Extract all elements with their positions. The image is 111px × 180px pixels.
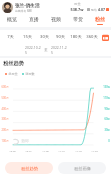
button[interactable]: 2022-11-25 bbox=[51, 45, 67, 55]
staticText: 15天 bbox=[23, 34, 32, 40]
button[interactable]: Rating badge bbox=[106, 8, 109, 11]
staticText: 概览 bbox=[7, 16, 17, 22]
staticText: 粉丝画像 bbox=[74, 166, 91, 171]
button[interactable]: 30天 bbox=[36, 30, 52, 44]
staticText: 360天 bbox=[86, 34, 98, 40]
staticText: 90天 bbox=[56, 34, 65, 40]
staticText: 500万 bbox=[1, 96, 9, 100]
staticText: 110w bbox=[103, 96, 110, 100]
staticText: 带货 bbox=[73, 16, 83, 22]
staticText: 总榜排名 688 bbox=[15, 9, 32, 13]
staticText: 直播 bbox=[29, 16, 39, 22]
staticText: 180天 bbox=[70, 34, 82, 40]
staticText: 11-18 bbox=[75, 149, 82, 152]
staticText: 30w bbox=[104, 128, 110, 132]
staticText: 2022-10-25 bbox=[25, 45, 41, 55]
staticText: 400万 bbox=[1, 107, 9, 111]
staticText: 数据 bbox=[21, 139, 29, 144]
button[interactable]: 粉丝趋势 bbox=[5, 162, 53, 174]
staticText: 4.87 bbox=[98, 7, 105, 12]
button[interactable]: 粉丝 bbox=[89, 14, 111, 27]
staticText: 30天 bbox=[40, 34, 49, 40]
staticText: 200万 bbox=[1, 128, 9, 132]
staticText: 130w bbox=[103, 85, 110, 89]
button[interactable]: 90天 bbox=[52, 30, 68, 44]
staticText: 2022-11-25 bbox=[51, 45, 67, 55]
staticText: 300万 bbox=[1, 117, 9, 121]
button[interactable]: 15天 bbox=[19, 30, 36, 44]
button[interactable]: 直播 bbox=[23, 14, 45, 27]
button[interactable]: 360天 bbox=[84, 30, 100, 44]
staticText: 涨粉数 bbox=[25, 72, 35, 76]
staticText: 总粉丝 bbox=[8, 72, 18, 76]
staticText: 538.7w bbox=[70, 7, 84, 12]
staticText: 11-06 bbox=[42, 149, 49, 152]
button[interactable]: 带货 bbox=[67, 14, 89, 27]
button[interactable]: Profile avatar bbox=[2, 2, 13, 13]
button[interactable]: 2022-10-25 bbox=[25, 45, 41, 55]
staticText: 7天 bbox=[7, 34, 14, 40]
button[interactable]: 概览 bbox=[0, 14, 23, 27]
button[interactable]: 粉丝画像 bbox=[58, 162, 106, 174]
staticText: 100万 bbox=[1, 139, 9, 143]
button[interactable]: Pick date range bbox=[101, 33, 109, 41]
staticText: 张兰·俏生活 bbox=[15, 2, 40, 8]
staticText: 粉丝趋势 bbox=[21, 166, 38, 171]
staticText: 粉丝趋势 bbox=[3, 60, 24, 67]
staticText: 粉丝 bbox=[95, 16, 105, 22]
staticText: 粉丝 bbox=[74, 2, 81, 6]
button[interactable]: 7天 bbox=[2, 30, 19, 44]
staticText: 10-31 bbox=[25, 149, 32, 152]
staticText: 预估 bbox=[91, 8, 97, 12]
staticText: 视频 bbox=[51, 16, 61, 22]
staticText: 10-25 bbox=[9, 149, 16, 152]
staticText: 11-24 bbox=[91, 149, 98, 152]
button[interactable]: 视频 bbox=[45, 14, 67, 27]
button[interactable]: 180天 bbox=[68, 30, 84, 44]
staticText: 11-12 bbox=[58, 149, 65, 152]
staticText: 90w bbox=[104, 107, 110, 111]
staticText: 600万 bbox=[1, 85, 9, 89]
staticText: 0 bbox=[108, 139, 110, 143]
staticText: 60w bbox=[104, 117, 110, 121]
staticText: 至 bbox=[44, 48, 48, 52]
